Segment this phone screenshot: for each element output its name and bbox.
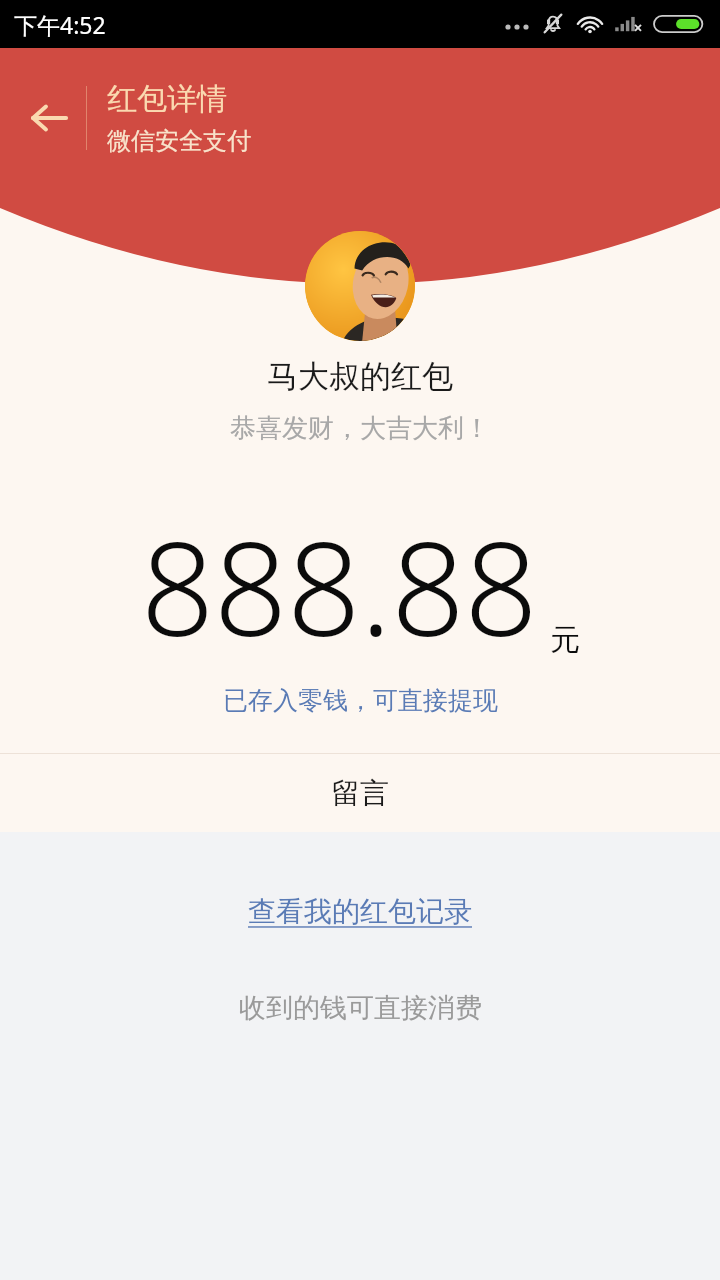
staticText: 马大叔的红包 (267, 357, 453, 396)
staticText: 查看我的红包记录 (248, 894, 472, 929)
button[interactable]: 留言 (0, 754, 720, 832)
staticText: 888.88 (141, 499, 538, 673)
staticText: 微信安全支付 (107, 126, 251, 156)
button[interactable]: 头像 (305, 231, 415, 341)
staticText: 元 (550, 621, 580, 659)
button[interactable]: 已存入零钱，可直接提现 (223, 685, 498, 716)
button[interactable]: 查看我的红包记录 (248, 894, 472, 929)
staticText: 收到的钱可直接消费 (239, 991, 482, 1025)
button[interactable]: 返回 (14, 83, 84, 153)
staticText: 恭喜发财，大吉大利！ (230, 412, 490, 445)
staticText: 红包详情 (107, 80, 227, 118)
staticText: 留言 (331, 775, 389, 812)
staticText: 已存入零钱，可直接提现 (223, 685, 498, 716)
staticText: 下午4:52 (14, 9, 106, 40)
